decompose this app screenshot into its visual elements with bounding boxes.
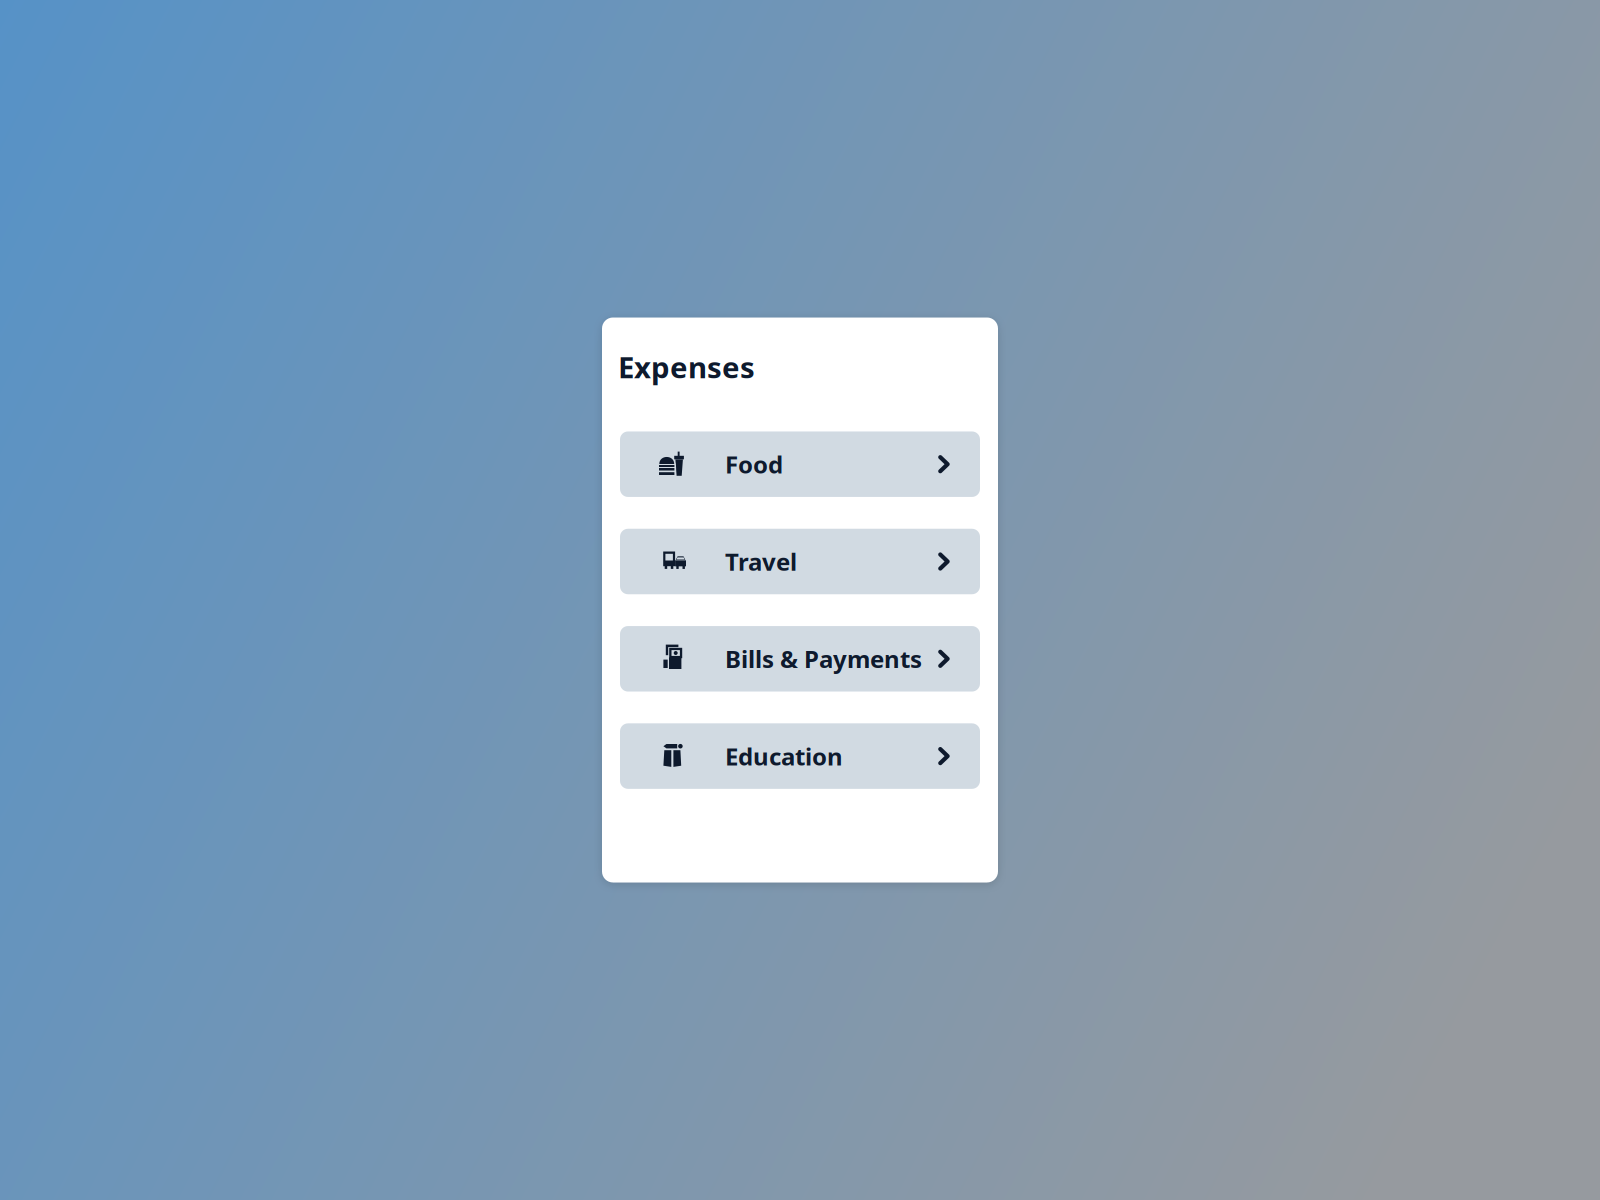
staticText: Expenses xyxy=(618,347,755,386)
button[interactable]: Food xyxy=(620,431,980,497)
staticText: Food xyxy=(725,448,783,480)
staticText: Travel xyxy=(725,546,797,577)
button[interactable]: Travel xyxy=(620,529,980,594)
staticText: Education xyxy=(725,740,843,772)
button[interactable]: Bills & Payments xyxy=(620,626,980,692)
staticText: Bills & Payments xyxy=(725,643,922,675)
button[interactable]: Education xyxy=(620,723,980,789)
